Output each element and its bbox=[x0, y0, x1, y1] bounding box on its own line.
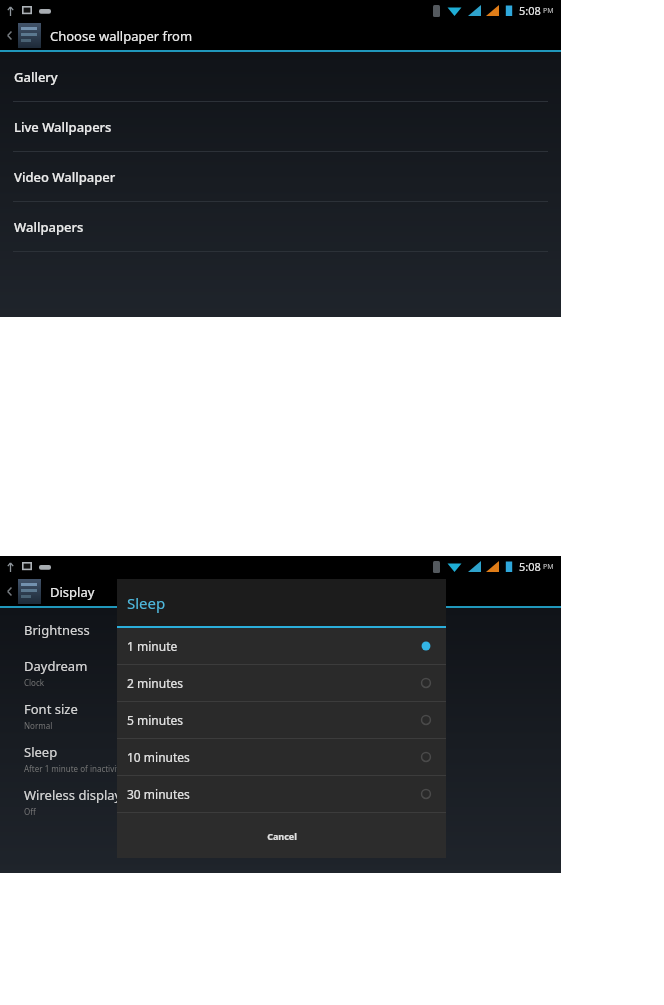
staticText: 5 minutes bbox=[127, 712, 418, 728]
button[interactable]: 30 minutes bbox=[117, 776, 446, 812]
staticText: PM bbox=[543, 6, 554, 16]
button[interactable]: Navigate up: Choose wallpaper from bbox=[0, 21, 561, 50]
staticText: 10 minutes bbox=[127, 749, 418, 765]
staticText: Brightness bbox=[24, 621, 90, 639]
button[interactable]: Live Wallpapers bbox=[0, 102, 561, 151]
button[interactable]: Brightness bbox=[0, 608, 561, 651]
staticText: Normal bbox=[24, 720, 53, 731]
button[interactable]: 2 minutes bbox=[117, 665, 446, 701]
button[interactable]: Gallery bbox=[0, 52, 561, 101]
staticText: Daydream bbox=[24, 657, 88, 675]
button[interactable]: Wallpapers bbox=[0, 202, 561, 251]
staticText: 1 minute bbox=[127, 638, 418, 654]
button[interactable]: Navigate up: Display bbox=[0, 577, 561, 606]
staticText: Display bbox=[50, 583, 95, 601]
button[interactable]: Font size bbox=[0, 694, 561, 737]
staticText: Live Wallpapers bbox=[14, 118, 112, 136]
button[interactable]: Video Wallpaper bbox=[0, 152, 561, 201]
staticText: Video Wallpaper bbox=[14, 168, 116, 186]
staticText: Choose wallpaper from bbox=[50, 27, 193, 45]
staticText: Off bbox=[24, 806, 36, 817]
button[interactable]: Daydream bbox=[0, 651, 561, 694]
button[interactable]: Sleep bbox=[0, 737, 561, 780]
staticText: Font size bbox=[24, 700, 78, 718]
staticText: Sleep bbox=[127, 593, 166, 613]
button[interactable]: Cancel bbox=[117, 813, 446, 858]
staticText: Wallpapers bbox=[14, 218, 84, 236]
button[interactable]: 1 minute bbox=[117, 628, 446, 664]
staticText: Cancel bbox=[267, 830, 297, 842]
staticText: 5:08 bbox=[519, 3, 541, 18]
staticText: Gallery bbox=[14, 68, 58, 86]
button[interactable]: 5 minutes bbox=[117, 702, 446, 738]
staticText: 30 minutes bbox=[127, 786, 418, 802]
button[interactable]: 10 minutes bbox=[117, 739, 446, 775]
staticText: Clock bbox=[24, 677, 45, 688]
button[interactable]: Wireless display bbox=[0, 780, 561, 823]
staticText: Wireless display bbox=[24, 786, 122, 804]
staticText: After 1 minute of inactivity bbox=[24, 763, 124, 774]
staticText: 2 minutes bbox=[127, 675, 418, 691]
staticText: PM bbox=[543, 562, 554, 572]
staticText: Sleep bbox=[24, 743, 58, 761]
staticText: 5:08 bbox=[519, 559, 541, 574]
